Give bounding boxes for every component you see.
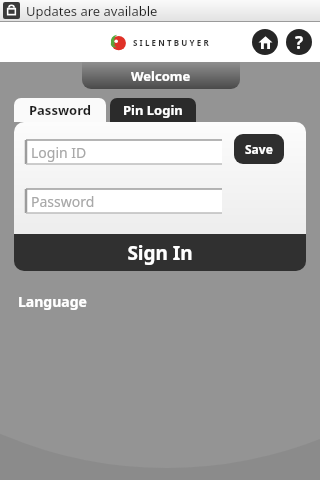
staticText: Pin Login — [123, 101, 183, 119]
staticText: SILENTBUYER — [133, 37, 211, 48]
button[interactable]: Language — [14, 290, 91, 313]
staticText: Save — [245, 141, 273, 157]
button[interactable]: Password — [26, 189, 222, 213]
staticText: Password — [29, 101, 91, 119]
button[interactable]: Login ID — [26, 140, 222, 164]
staticText: Sign In — [127, 240, 193, 266]
button[interactable]: Welcome — [82, 62, 240, 89]
button[interactable]: Home — [252, 29, 278, 55]
staticText: Language — [18, 292, 87, 311]
button[interactable]: Pin Login — [110, 98, 196, 122]
staticText: Updates are available — [26, 2, 158, 20]
button[interactable]: Sign In — [14, 234, 306, 271]
button[interactable]: Password — [14, 98, 106, 122]
button[interactable]: Help — [286, 29, 312, 55]
staticText: ? — [295, 31, 304, 54]
staticText: Welcome — [131, 67, 191, 85]
button[interactable]: Save — [234, 134, 284, 164]
staticText: Login ID — [31, 143, 87, 162]
staticText: Password — [31, 192, 95, 211]
